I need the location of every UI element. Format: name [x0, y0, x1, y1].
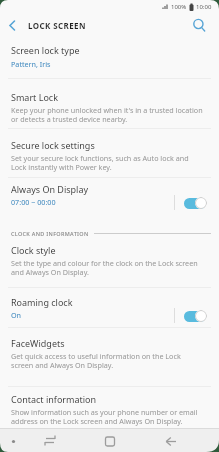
button[interactable]: Contact information [0, 387, 219, 428]
staticText: LOCK SCREEN [28, 20, 86, 31]
staticText: Clock style [11, 244, 56, 256]
staticText: On [11, 310, 22, 320]
staticText: Screen lock type [11, 44, 80, 56]
staticText: Pattern, Iris [11, 59, 51, 69]
button[interactable]: Secure lock settings [0, 129, 219, 177]
staticText: 07:00 ~ 00:00 [11, 197, 56, 207]
button[interactable]: Smart Lock [0, 79, 219, 128]
staticText: Show information such as your phone numb… [11, 407, 198, 426]
staticText: Roaming clock [11, 296, 73, 308]
staticText: Keep your phone unlocked when it's in a … [11, 105, 203, 124]
button[interactable]: FaceWidgets [0, 328, 219, 386]
button[interactable]: Screen lock type [0, 38, 219, 78]
staticText: CLOCK AND INFORMATION [11, 230, 89, 237]
button[interactable] [146, 428, 219, 452]
button[interactable] [0, 20, 16, 31]
button[interactable] [73, 428, 146, 452]
staticText: Contact information [11, 393, 97, 405]
staticText: Set the type and colour for the clock on… [11, 258, 198, 277]
staticText: 10:00 [196, 3, 212, 11]
staticText: Secure lock settings [11, 139, 95, 151]
staticText: FaceWidgets [11, 337, 65, 349]
staticText: Smart Lock [11, 91, 58, 103]
button[interactable] [0, 428, 73, 452]
staticText: 100% [171, 3, 187, 11]
button[interactable]: Roaming clock [0, 288, 219, 327]
staticText: Set your secure lock functions, such as … [11, 153, 189, 172]
button[interactable] [193, 19, 219, 32]
staticText: Always On Display [11, 183, 89, 195]
staticText: Get quick access to useful information o… [11, 351, 181, 370]
button[interactable]: Always On Display [0, 178, 219, 215]
button[interactable]: Clock style [0, 241, 219, 287]
